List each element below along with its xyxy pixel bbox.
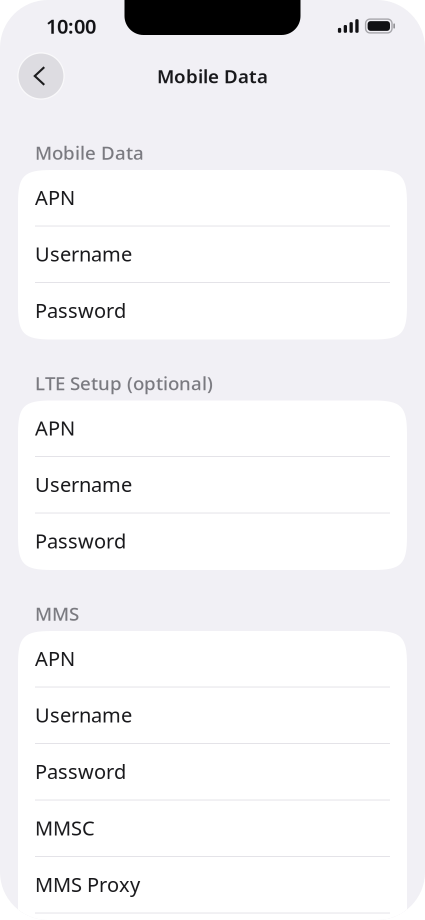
button[interactable]: APN: [18, 170, 407, 226]
staticText: MMS Proxy: [35, 871, 140, 898]
staticText: Username: [35, 240, 132, 267]
button[interactable]: MMS Max Message Size: [18, 913, 407, 920]
staticText: APN: [35, 184, 75, 211]
button[interactable]: Password: [18, 744, 407, 800]
button[interactable]: MMS Proxy: [18, 857, 407, 913]
staticText: Password: [35, 297, 126, 324]
button[interactable]: APN: [18, 400, 407, 457]
button[interactable]: MMSC: [18, 800, 407, 857]
staticText: Password: [35, 527, 126, 554]
staticText: Username: [35, 701, 132, 728]
staticText: Mobile Data: [157, 64, 268, 88]
staticText: MMS: [35, 601, 79, 626]
staticText: Username: [35, 471, 132, 498]
button[interactable]: Username: [18, 226, 407, 283]
button[interactable]: Password: [18, 283, 407, 339]
staticText: Mobile Data: [35, 140, 144, 165]
button[interactable]: Back: [18, 53, 64, 99]
button[interactable]: Username: [18, 457, 407, 513]
staticText: MMSC: [35, 814, 95, 841]
staticText: 10:00: [46, 13, 96, 39]
button[interactable]: Password: [18, 513, 407, 570]
staticText: APN: [35, 414, 75, 441]
staticText: APN: [35, 645, 75, 672]
button[interactable]: Username: [18, 687, 407, 744]
staticText: LTE Setup (optional): [35, 371, 213, 395]
staticText: Password: [35, 758, 126, 785]
button[interactable]: APN: [18, 631, 407, 687]
